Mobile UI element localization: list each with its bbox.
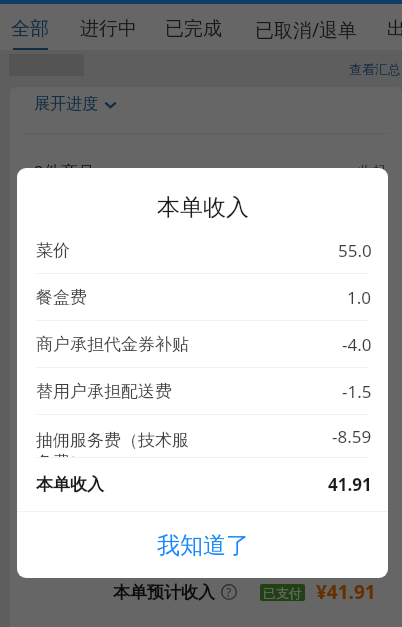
- staticText: ¥41.91: [316, 579, 376, 605]
- staticText: 出: [387, 17, 402, 41]
- staticText: -4.0: [342, 333, 372, 356]
- staticText: 55.0: [338, 239, 372, 262]
- staticText: ?: [226, 584, 232, 600]
- staticText: 展开进度: [34, 94, 98, 114]
- button[interactable]: 已取消/退单: [255, 4, 358, 50]
- button[interactable]: 已完成: [165, 4, 222, 50]
- staticText: 2件商品: [34, 160, 95, 183]
- button[interactable]: 展开进度: [34, 94, 117, 114]
- staticText: -1.5: [342, 380, 372, 403]
- staticText: 我知道了: [157, 531, 249, 560]
- button[interactable]: 进行中: [80, 4, 137, 50]
- button[interactable]: 出: [387, 4, 402, 50]
- staticText: 商户承担代金券补贴: [36, 334, 342, 355]
- staticText: 本单收入: [157, 193, 249, 222]
- staticText: 本单预计收入: [113, 582, 215, 603]
- button[interactable]: 我知道了: [17, 512, 388, 578]
- staticText: 1.0: [347, 286, 372, 309]
- staticText: 替用户承担配送费: [36, 381, 342, 402]
- staticText: 本单收入: [36, 474, 328, 495]
- staticText: 菜价: [36, 240, 338, 261]
- staticText: 抽佣服务费（技术服务费）: [36, 430, 203, 457]
- staticText: 已完成: [165, 17, 222, 41]
- staticText: 进行中: [80, 17, 137, 41]
- button[interactable]: 查看汇总: [349, 61, 401, 77]
- staticText: 已支付: [263, 585, 302, 601]
- button[interactable]: Help: [221, 584, 237, 600]
- staticText: 全部: [11, 17, 49, 41]
- button[interactable]: 全部: [11, 4, 49, 50]
- staticText: 已取消/退单: [255, 17, 358, 43]
- staticText: 收起: [358, 163, 386, 181]
- staticText: 餐盒费: [36, 287, 347, 308]
- staticText: 41.91: [328, 473, 372, 496]
- staticText: -8.59: [332, 425, 372, 448]
